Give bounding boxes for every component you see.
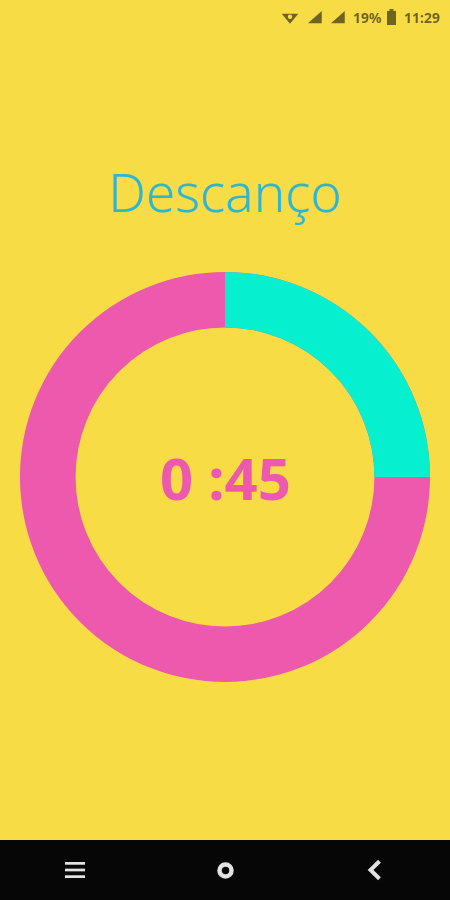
button[interactable]: Recent apps [0, 840, 150, 900]
staticText: 11:29 [404, 8, 440, 27]
staticText: 19% [353, 8, 382, 27]
button[interactable]: Home [150, 840, 300, 900]
staticText: 0 :45 [160, 438, 291, 517]
button[interactable]: 0 :45 [20, 272, 430, 682]
staticText: Descanço [108, 155, 342, 227]
button[interactable]: Back [300, 840, 450, 900]
